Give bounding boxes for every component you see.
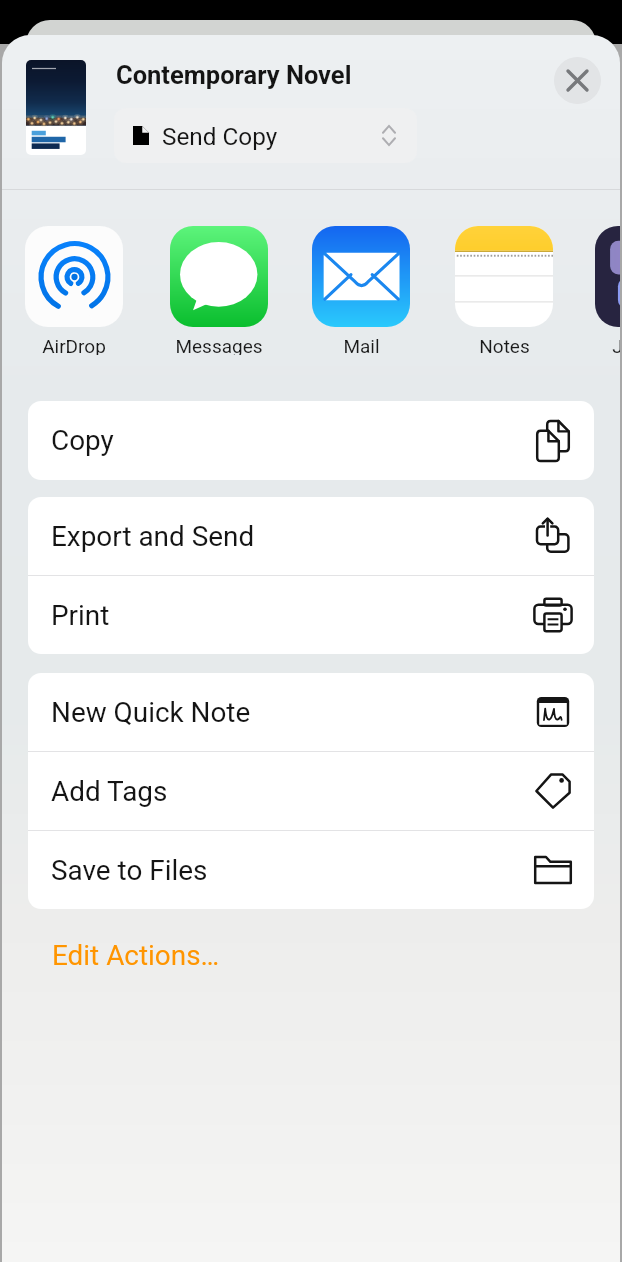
button[interactable]: Add Tags <box>28 752 594 830</box>
staticText: Copy <box>51 424 114 457</box>
button[interactable]: Copy <box>28 401 594 480</box>
staticText: Export and Send <box>51 520 255 553</box>
staticText: Print <box>51 599 110 632</box>
staticText: Notes <box>479 335 530 355</box>
button[interactable]: Edit Actions… <box>50 934 222 977</box>
button[interactable]: Export and Send <box>28 497 594 575</box>
staticText: Send Copy <box>162 122 278 150</box>
staticText: Journal <box>612 335 620 355</box>
button[interactable]: Notes <box>455 226 553 355</box>
button[interactable]: Journal <box>595 226 620 355</box>
staticText: Mail <box>343 335 380 355</box>
staticText: New Quick Note <box>51 696 251 729</box>
button[interactable]: AirDrop <box>25 226 123 355</box>
button[interactable]: New Quick Note <box>28 673 594 751</box>
button[interactable]: Send Copy <box>114 108 417 163</box>
staticText: AirDrop <box>42 335 106 355</box>
staticText: Add Tags <box>51 775 168 808</box>
staticText: Save to Files <box>51 854 208 887</box>
button[interactable]: Mail <box>312 226 410 355</box>
staticText: Contemporary Novel <box>116 60 352 90</box>
button[interactable]: Close <box>554 57 601 104</box>
button[interactable]: Save to Files <box>28 831 594 909</box>
staticText: Messages <box>175 335 263 355</box>
button[interactable]: Print <box>28 576 594 654</box>
button[interactable]: Messages <box>170 226 268 355</box>
staticText: Edit Actions… <box>52 939 220 972</box>
